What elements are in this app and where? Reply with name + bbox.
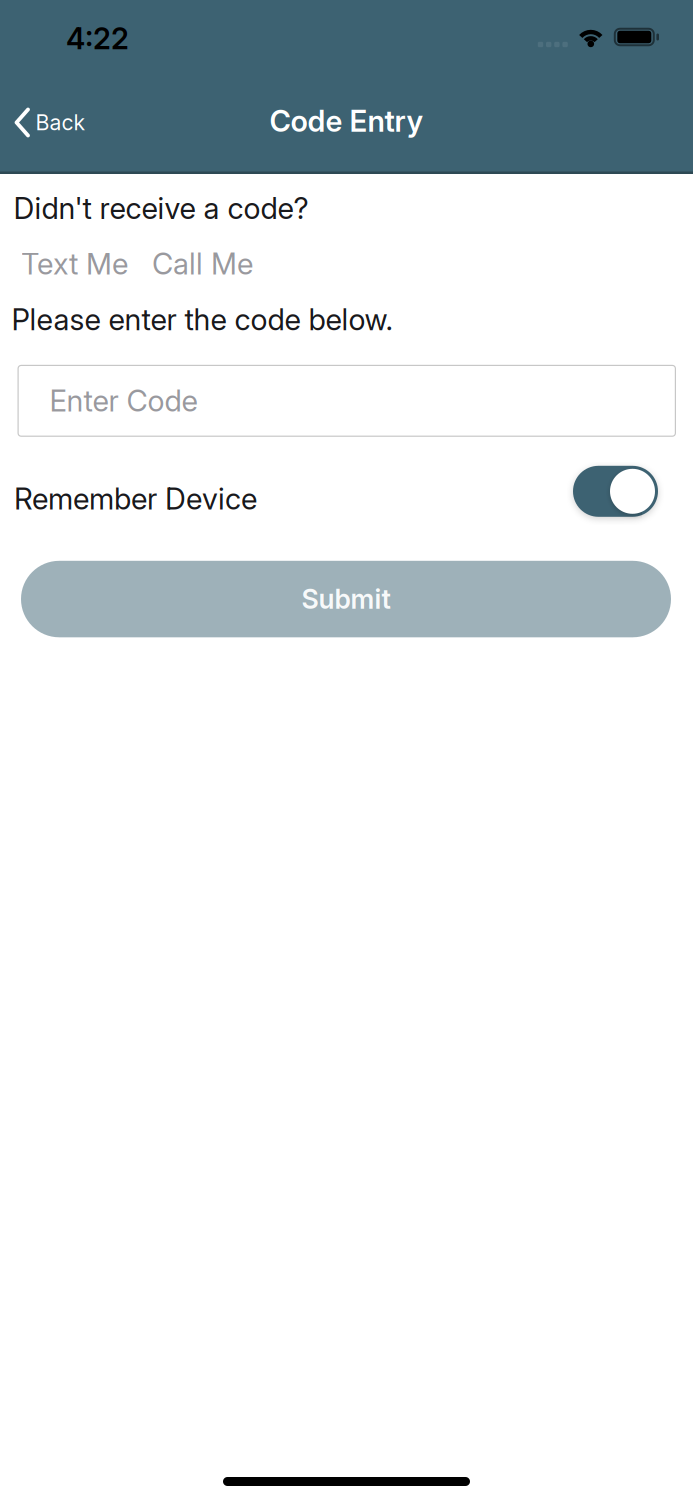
staticText: Back: [35, 110, 85, 135]
button[interactable]: Call Me: [152, 247, 253, 281]
staticText: Please enter the code below.: [11, 302, 393, 337]
staticText: Text Me: [21, 247, 128, 281]
staticText: Enter Code: [49, 383, 197, 418]
button[interactable]: Enter Code: [17, 365, 676, 437]
button[interactable]: Back: [0, 107, 85, 137]
button[interactable]: Remember Device: [573, 466, 658, 517]
button[interactable]: Text Me: [21, 247, 128, 281]
staticText: Submit: [301, 583, 390, 615]
staticText: Code Entry: [269, 104, 423, 138]
button[interactable]: Submit: [21, 561, 671, 637]
staticText: Call Me: [152, 247, 253, 281]
staticText: Remember Device: [14, 481, 257, 516]
staticText: Didn't receive a code?: [13, 191, 308, 226]
staticText: 4:22: [66, 21, 129, 56]
